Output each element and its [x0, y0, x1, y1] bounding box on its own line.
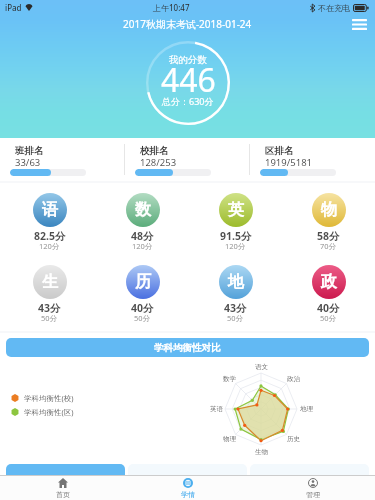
button[interactable]: 语: [3, 193, 96, 254]
staticText: 43分: [38, 301, 61, 315]
staticText: 我的分数: [169, 54, 207, 66]
staticText: iPad: [5, 2, 22, 13]
staticText: 学科均衡性对比: [154, 342, 221, 354]
staticText: 91.5分: [220, 229, 252, 243]
staticText: 33/63: [15, 156, 41, 169]
staticText: 历: [135, 272, 151, 292]
staticText: 政: [321, 272, 337, 292]
button[interactable]: 政: [282, 265, 375, 326]
staticText: 40分: [317, 301, 340, 315]
button[interactable]: 生: [3, 265, 96, 326]
staticText: 区排名: [265, 145, 294, 157]
staticText: 50分: [134, 313, 151, 323]
staticText: 2017秋期末考试-2018-01-24: [123, 17, 252, 31]
staticText: 上午10:47: [153, 2, 190, 13]
staticText: 446: [161, 58, 216, 102]
staticText: 数学: [223, 375, 236, 383]
staticText: 50分: [227, 313, 244, 323]
staticText: 120分: [225, 241, 246, 251]
button[interactable]: 物: [282, 193, 375, 254]
staticText: 首页: [56, 490, 70, 499]
staticText: 50分: [320, 313, 337, 323]
staticText: 不在充电: [318, 3, 350, 13]
button[interactable]: [6, 464, 125, 475]
button[interactable]: 区排名: [250, 138, 375, 181]
staticText: 地: [228, 272, 244, 292]
button[interactable]: 历: [96, 265, 189, 326]
staticText: 50分: [41, 313, 58, 323]
staticText: 地理: [300, 405, 313, 413]
staticText: 物理: [223, 435, 236, 443]
staticText: 学科均衡性(区): [24, 407, 74, 417]
button[interactable]: 管理: [250, 476, 375, 500]
staticText: 英: [228, 200, 244, 220]
staticText: 总分：630分: [162, 95, 214, 107]
staticText: 语文: [255, 363, 268, 371]
staticText: 学科均衡性(校): [24, 393, 74, 403]
staticText: 48分: [131, 229, 154, 243]
staticText: 128/253: [140, 156, 177, 169]
button[interactable]: 首页: [0, 476, 125, 500]
staticText: 班排名: [15, 145, 44, 157]
staticText: 120分: [132, 241, 153, 251]
staticText: 英语: [210, 405, 223, 413]
staticText: 物: [321, 200, 337, 220]
staticText: 58分: [317, 229, 340, 243]
button[interactable]: 学情: [125, 476, 250, 500]
staticText: 40分: [131, 301, 154, 315]
staticText: 管理: [306, 490, 320, 499]
button[interactable]: 校排名: [125, 138, 250, 181]
staticText: 生: [42, 272, 58, 292]
staticText: 82.5分: [34, 229, 66, 243]
staticText: 校排名: [140, 145, 169, 157]
staticText: 70分: [320, 241, 337, 251]
staticText: 1919/5181: [265, 156, 313, 169]
button[interactable]: 班排名: [0, 138, 125, 181]
staticText: 政治: [287, 375, 300, 383]
staticText: 数: [135, 200, 151, 220]
button[interactable]: 地: [189, 265, 282, 326]
button[interactable]: 数: [96, 193, 189, 254]
button[interactable]: Menu: [348, 13, 370, 35]
staticText: 生物: [255, 448, 268, 456]
staticText: 43分: [224, 301, 247, 315]
staticText: 历史: [287, 435, 300, 443]
staticText: 学情: [181, 490, 195, 499]
button[interactable]: 学科均衡性对比: [6, 338, 369, 357]
staticText: 语: [42, 200, 58, 220]
button[interactable]: 英: [189, 193, 282, 254]
staticText: 120分: [39, 241, 60, 251]
